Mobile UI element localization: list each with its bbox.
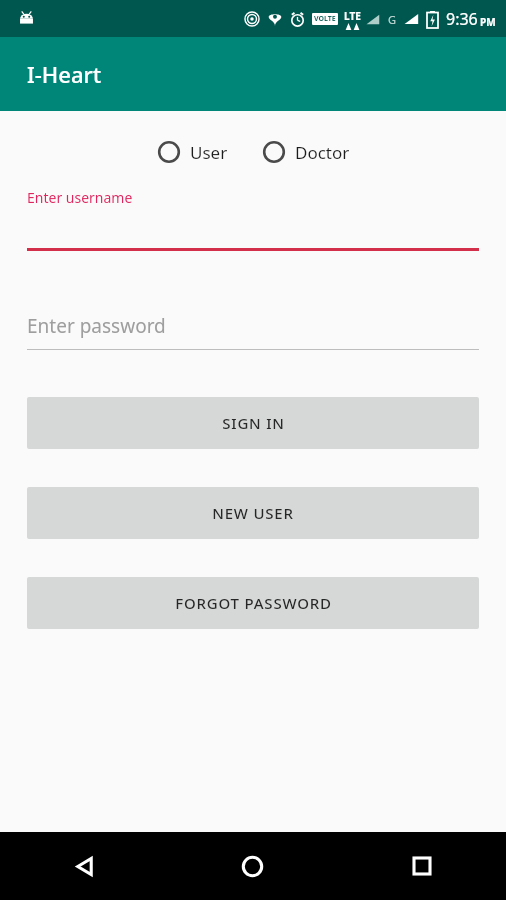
button[interactable]: Doctor [258, 134, 354, 170]
button[interactable]: Recent apps [337, 832, 506, 900]
staticText: Enter username [27, 188, 133, 207]
button[interactable]: Back [0, 832, 168, 900]
button[interactable]: NEW USER [27, 487, 479, 539]
button[interactable]: User [153, 134, 232, 170]
staticText: 9:36 [446, 8, 478, 30]
staticText: NEW USER [212, 503, 294, 523]
staticText: User [190, 141, 228, 164]
button[interactable]: Enter password [27, 313, 479, 350]
staticText: SIGN IN [222, 413, 285, 433]
button[interactable]: SIGN IN [27, 397, 479, 449]
staticText: G [388, 12, 397, 27]
staticText: I-Heart [27, 59, 102, 89]
button[interactable]: Enter username [27, 188, 479, 251]
staticText: LTE [344, 9, 361, 23]
button[interactable]: Home [168, 832, 337, 900]
button[interactable]: FORGOT PASSWORD [27, 577, 479, 629]
staticText: VOLTE [314, 14, 336, 24]
staticText: Doctor [295, 141, 350, 164]
staticText: PM [480, 15, 496, 29]
staticText: Enter password [27, 313, 166, 339]
staticText: FORGOT PASSWORD [175, 593, 332, 613]
